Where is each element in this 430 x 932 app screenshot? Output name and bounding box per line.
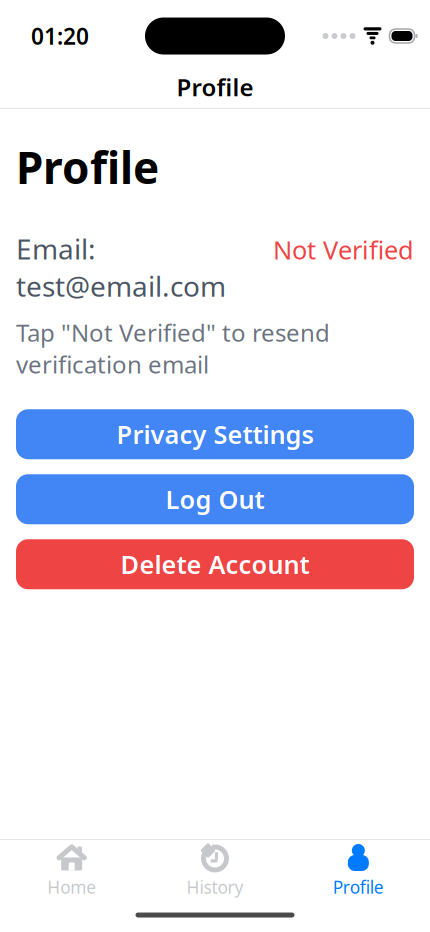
staticText: Profile <box>176 71 253 103</box>
staticText: Privacy Settings <box>116 417 313 451</box>
staticText: Profile <box>333 875 384 898</box>
staticText: Delete Account <box>120 547 309 581</box>
staticText: Not Verified <box>273 233 414 266</box>
staticText: History <box>186 875 243 898</box>
staticText: Log Out <box>165 482 264 516</box>
button[interactable]: Not Verified <box>273 233 414 266</box>
button[interactable]: History <box>143 835 287 902</box>
staticText: Home <box>47 875 96 898</box>
button[interactable]: Log Out <box>16 474 414 524</box>
staticText: 01:20 <box>31 21 89 51</box>
staticText: Tap "Not Verified" to resend verificatio… <box>16 316 330 380</box>
button[interactable]: Privacy Settings <box>16 409 414 459</box>
staticText: Email: test@email.com <box>16 230 226 304</box>
button[interactable]: Delete Account <box>16 539 414 589</box>
button[interactable]: Home <box>0 835 143 902</box>
staticText: Profile <box>16 138 159 196</box>
button[interactable]: Profile <box>287 835 430 902</box>
